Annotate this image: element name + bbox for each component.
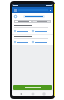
button[interactable]: Menu — [13, 8, 17, 12]
button[interactable]: Edit — [14, 41, 32, 43]
button[interactable]: More options — [49, 9, 52, 12]
button[interactable]: Filter — [14, 15, 17, 18]
button[interactable]: Details — [32, 30, 51, 32]
button[interactable] — [14, 20, 32, 23]
button[interactable]: Home — [31, 92, 35, 96]
button[interactable]: Details — [32, 41, 51, 43]
button[interactable] — [23, 15, 45, 18]
button[interactable] — [32, 20, 51, 23]
button[interactable] — [13, 85, 52, 90]
button[interactable]: Back — [19, 92, 23, 96]
button[interactable]: Recent apps — [42, 92, 46, 96]
button[interactable]: Edit — [14, 30, 32, 32]
